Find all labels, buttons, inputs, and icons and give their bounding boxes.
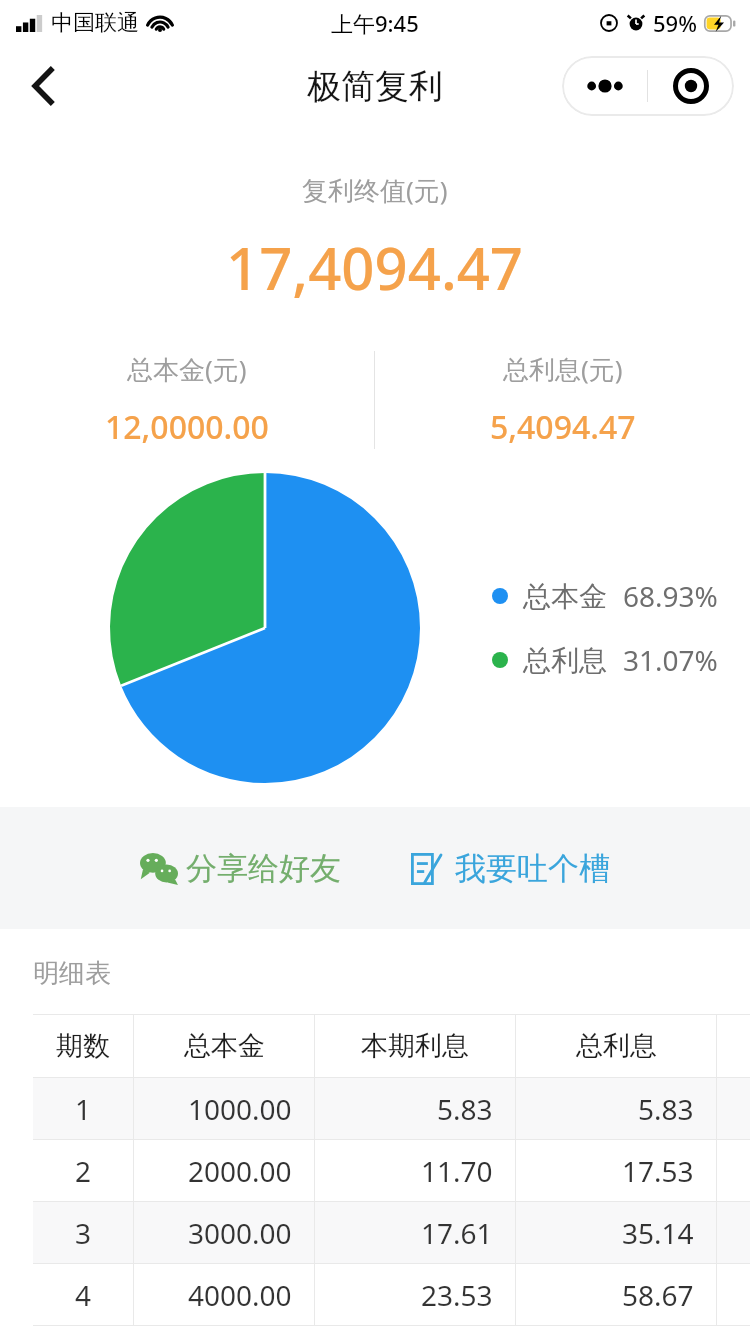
staticText: 3 xyxy=(75,1214,92,1252)
staticText: 总本金 xyxy=(523,579,607,614)
staticText: 总利息 xyxy=(523,643,607,678)
button[interactable]: 返回 xyxy=(14,57,72,115)
button[interactable]: 1 xyxy=(33,1078,750,1140)
staticText: 总本金 xyxy=(184,1029,265,1063)
staticText: 5,4094.47 xyxy=(490,405,636,449)
staticText: 5.83 xyxy=(638,1090,694,1128)
staticText: 4 xyxy=(75,1276,92,1314)
staticText: 68.93% xyxy=(623,577,718,615)
staticText: 12,0000.00 xyxy=(105,405,269,449)
button[interactable]: 关闭 xyxy=(648,56,734,116)
staticText: 我要吐个槽 xyxy=(455,849,610,888)
staticText: 2000.00 xyxy=(188,1152,292,1190)
staticText: 3000.00 xyxy=(188,1214,292,1252)
staticText: 1000.00 xyxy=(188,1090,292,1128)
staticText: 4000.00 xyxy=(188,1276,292,1314)
staticText: 23.53 xyxy=(421,1276,493,1314)
staticText: 中国联通 xyxy=(51,9,139,37)
staticText: 2 xyxy=(75,1152,92,1190)
staticText: 59% xyxy=(653,8,697,38)
button[interactable]: 分享给好友 xyxy=(128,835,353,902)
staticText: 58.67 xyxy=(622,1276,694,1314)
staticText: 期数 xyxy=(56,1029,110,1063)
staticText: 本期利息 xyxy=(361,1029,469,1063)
staticText: 总本金(元) xyxy=(127,351,247,387)
staticText: 明细表 xyxy=(33,957,111,990)
staticText: 5.83 xyxy=(437,1090,493,1128)
staticText: 17.61 xyxy=(421,1214,493,1252)
staticText: 总利息 xyxy=(576,1029,657,1063)
staticText: 17,4094.47 xyxy=(226,228,524,307)
staticText: 复利终值(元) xyxy=(302,172,448,208)
button[interactable]: 4 xyxy=(33,1264,750,1326)
staticText: 11.70 xyxy=(421,1152,493,1190)
staticText: 31.07% xyxy=(623,641,718,679)
button[interactable]: 3 xyxy=(33,1202,750,1264)
staticText: 极简复利 xyxy=(307,65,443,108)
staticText: 17.53 xyxy=(622,1152,694,1190)
staticText: 35.14 xyxy=(622,1214,694,1252)
staticText: 1 xyxy=(75,1090,92,1128)
button[interactable]: 更多 xyxy=(562,56,647,116)
staticText: 上午9:45 xyxy=(331,8,419,38)
staticText: 总利息(元) xyxy=(503,351,623,387)
button[interactable]: 2 xyxy=(33,1140,750,1202)
staticText: 分享给好友 xyxy=(186,849,341,888)
button[interactable]: 我要吐个槽 xyxy=(399,835,622,902)
